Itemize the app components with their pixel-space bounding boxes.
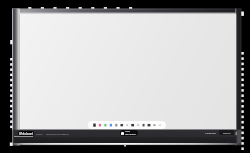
button[interactable]: 12:45 PM [205,131,216,134]
staticText: Meeting Rooms [46,132,65,135]
button[interactable]: More options [234,131,239,136]
staticText: Whiteboard [19,132,34,135]
staticText: 12:45 PM [205,131,216,134]
button[interactable]: Apps [63,131,69,135]
button[interactable]: Whiteboard [18,131,34,136]
button[interactable]: Search [219,130,234,135]
button[interactable]: Drawing tools [88,121,166,129]
staticText: Search [223,131,231,134]
button[interactable]: Open [36,131,43,135]
staticText: New document [125,130,138,136]
staticText: Apps [63,132,69,135]
staticText: Open [36,132,43,135]
button[interactable]: New document [120,130,138,136]
button[interactable]: Meeting Rooms [46,131,65,135]
